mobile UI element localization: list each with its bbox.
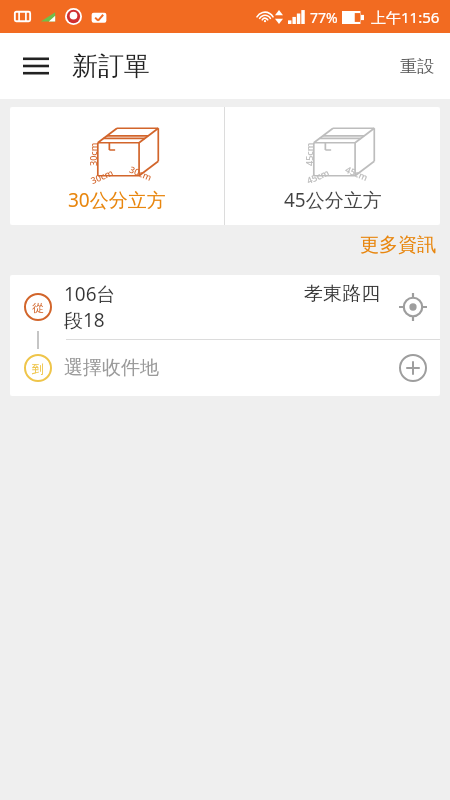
button[interactable]: 30cm xyxy=(10,107,224,225)
staticText: 段18 xyxy=(64,307,105,333)
staticText: 45cm xyxy=(303,142,315,166)
staticText: 從 xyxy=(32,300,44,315)
staticText: 孝東路四 xyxy=(304,282,380,306)
button[interactable]: 到 xyxy=(10,340,440,396)
staticText: 30公分立方 xyxy=(68,187,166,213)
staticText: 到 xyxy=(32,361,44,376)
staticText: 30cm xyxy=(128,163,154,183)
staticText: 77% xyxy=(310,8,338,27)
button[interactable]: Menu xyxy=(14,44,58,88)
staticText: 上午11:56 xyxy=(371,7,440,27)
button[interactable]: 重設 xyxy=(384,46,450,87)
staticText: 106台 xyxy=(64,281,116,307)
staticText: 30cm xyxy=(89,166,115,186)
button[interactable]: 從 xyxy=(10,275,440,339)
button[interactable]: 45cm xyxy=(225,107,440,225)
staticText: 45cm xyxy=(344,163,370,183)
staticText: 新訂單 xyxy=(72,50,150,83)
staticText: 選擇收件地 xyxy=(64,356,386,380)
staticText: 30cm xyxy=(87,142,99,166)
button[interactable]: Use current location xyxy=(386,280,440,334)
button[interactable]: Add destination xyxy=(386,341,440,395)
button[interactable]: 更多資訊 xyxy=(346,225,450,265)
staticText: 45cm xyxy=(305,166,331,186)
staticText: 更多資訊 xyxy=(360,233,436,257)
staticText: 45公分立方 xyxy=(284,187,382,213)
staticText: 重設 xyxy=(400,56,434,77)
